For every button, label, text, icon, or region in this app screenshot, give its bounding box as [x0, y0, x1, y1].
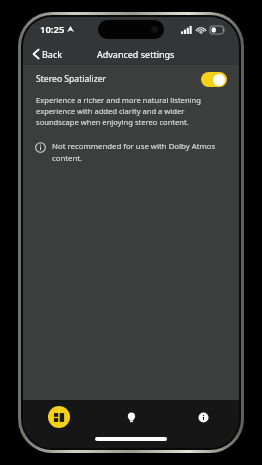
button[interactable]: Information: [192, 406, 214, 428]
button[interactable]: Equalizer: [48, 406, 70, 428]
staticText: Not recommended for use with Dolby Atmos…: [52, 141, 217, 163]
staticText: Stereo Spatializer: [36, 73, 107, 85]
staticText: Advanced settings: [97, 48, 175, 60]
staticText: Back: [42, 48, 63, 60]
button[interactable]: Tips: [120, 406, 142, 428]
staticText: Experience a richer and more natural lis…: [36, 95, 221, 127]
button[interactable]: Back: [23, 45, 71, 63]
button[interactable]: Stereo Spatializer: [23, 65, 239, 93]
other: Stereo Spatializer toggle, on: [201, 72, 227, 87]
staticText: 10:25: [40, 23, 65, 36]
